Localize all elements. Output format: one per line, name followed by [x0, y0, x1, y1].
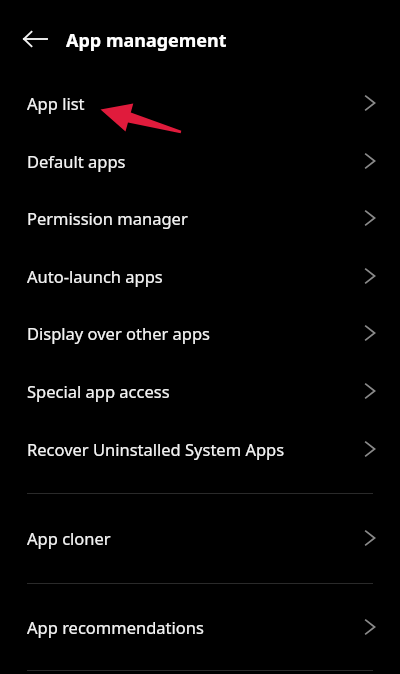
staticText: Special app access — [27, 380, 170, 402]
button[interactable]: Recover Uninstalled System Apps — [0, 420, 400, 478]
staticText: App recommendations — [27, 616, 204, 638]
staticText: App management — [66, 28, 227, 53]
staticText: Permission manager — [27, 207, 188, 229]
button[interactable]: App list — [0, 74, 400, 132]
button[interactable]: Special app access — [0, 362, 400, 420]
button[interactable]: Display over other apps — [0, 304, 400, 362]
button[interactable]: Permission manager — [0, 189, 400, 247]
staticText: Auto-launch apps — [27, 265, 163, 287]
button[interactable]: Default apps — [0, 132, 400, 190]
staticText: Display over other apps — [27, 322, 211, 344]
button[interactable]: App recommendations — [0, 598, 400, 656]
button[interactable]: App cloner — [0, 509, 400, 567]
button[interactable]: Back — [14, 18, 56, 60]
staticText: App cloner — [27, 527, 111, 549]
button[interactable]: Auto-launch apps — [0, 247, 400, 305]
staticText: App list — [27, 92, 85, 114]
staticText: Default apps — [27, 150, 126, 172]
staticText: Recover Uninstalled System Apps — [27, 438, 285, 460]
